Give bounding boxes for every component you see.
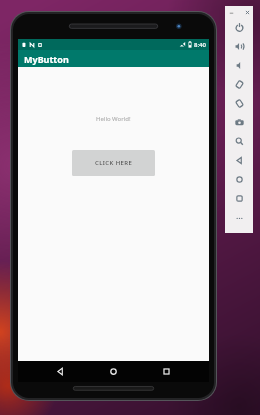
button[interactable]: Close <box>243 8 251 16</box>
button[interactable]: Rotate right <box>225 94 253 113</box>
button[interactable]: Recents <box>156 361 177 382</box>
button[interactable]: Overview <box>225 189 253 208</box>
button[interactable]: CLICK HERE <box>72 150 155 176</box>
staticText: MyButton <box>24 53 69 65</box>
staticText: Hello World! <box>96 115 131 123</box>
button[interactable]: Home <box>225 170 253 189</box>
button[interactable]: Home <box>103 361 124 382</box>
button[interactable]: More options <box>225 208 253 227</box>
button[interactable]: Volume down <box>225 56 253 75</box>
button[interactable]: Zoom <box>225 132 253 151</box>
button[interactable]: Rotate left <box>225 75 253 94</box>
button[interactable]: Back <box>225 151 253 170</box>
button[interactable]: Minimize <box>227 8 235 16</box>
button[interactable]: Power <box>225 18 253 37</box>
button[interactable]: Volume up <box>225 37 253 56</box>
staticText: CLICK HERE <box>95 159 133 167</box>
button[interactable]: Back <box>50 361 71 382</box>
staticText: 8:40 <box>194 41 206 49</box>
button[interactable]: Screenshot <box>225 113 253 132</box>
